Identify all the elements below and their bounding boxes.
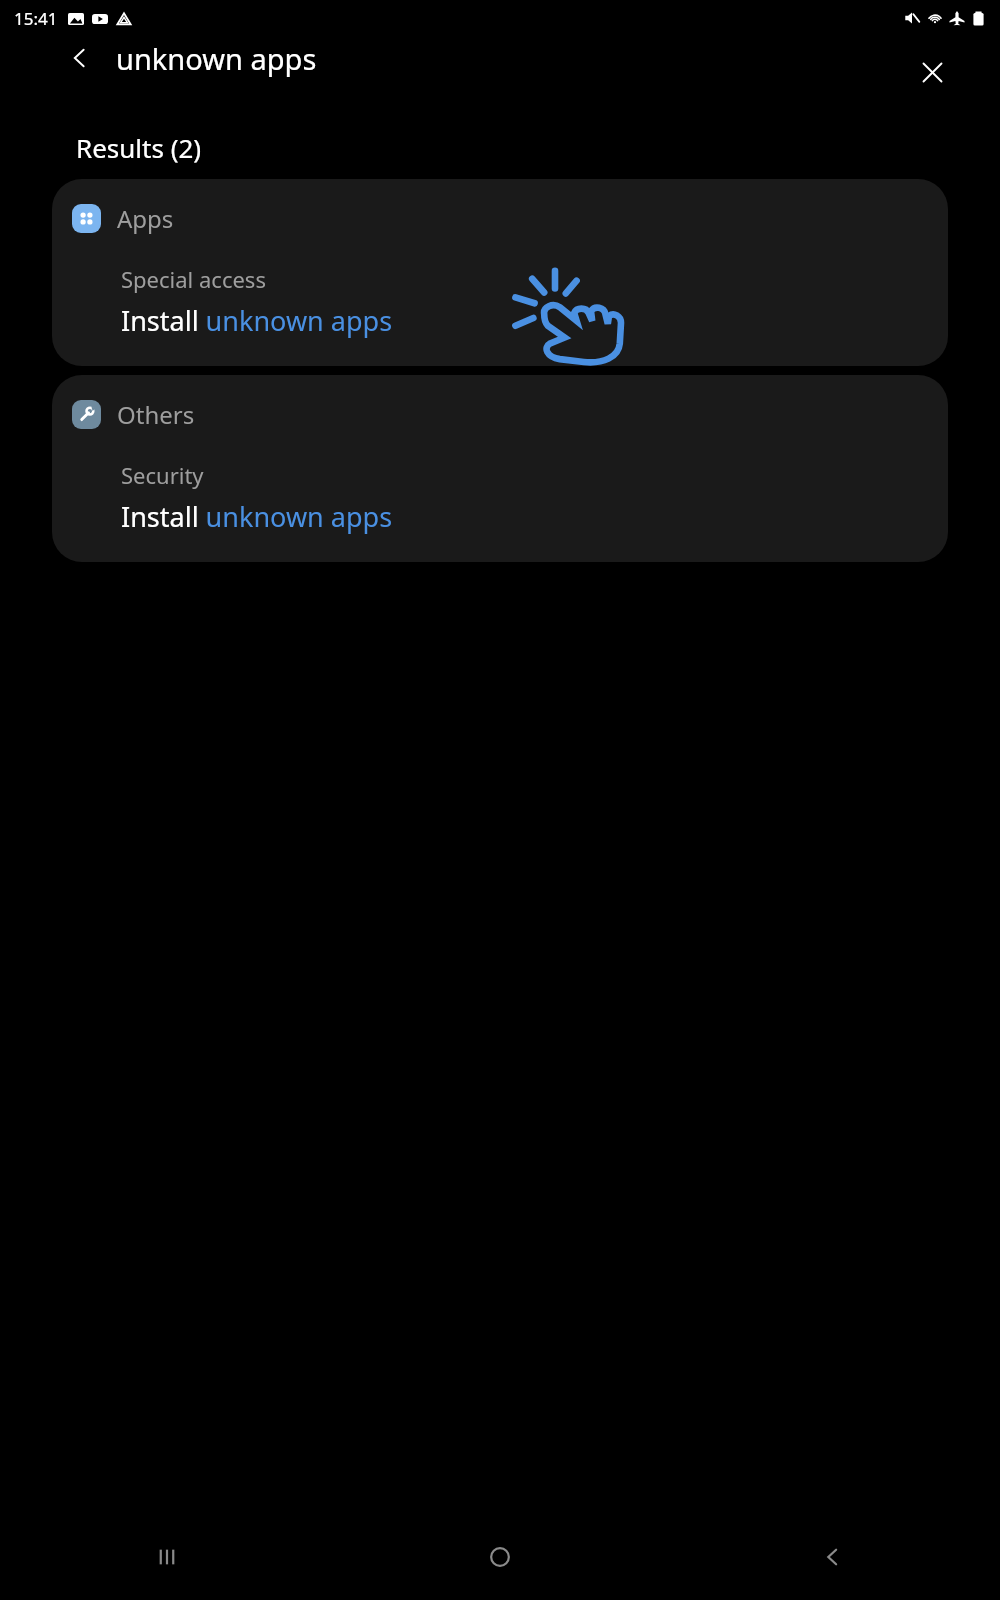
staticText: Apps xyxy=(117,202,174,235)
staticText: Install unknown apps xyxy=(121,498,393,535)
staticText: 15:41 xyxy=(14,7,58,30)
button[interactable]: Back xyxy=(795,1519,871,1595)
button[interactable]: Recent apps xyxy=(129,1519,205,1595)
button[interactable]: Apps xyxy=(52,179,948,366)
staticText: Special access xyxy=(121,264,266,294)
staticText: unknown apps xyxy=(116,39,317,78)
staticText: Results (2) xyxy=(76,130,202,165)
button[interactable]: Home xyxy=(462,1519,538,1595)
button[interactable]: Others xyxy=(52,375,948,562)
staticText: Others xyxy=(117,398,195,431)
button[interactable]: Back xyxy=(58,36,102,80)
button[interactable]: Close search xyxy=(908,48,956,96)
staticText: Install unknown apps xyxy=(121,302,393,339)
staticText: Security xyxy=(121,460,204,490)
